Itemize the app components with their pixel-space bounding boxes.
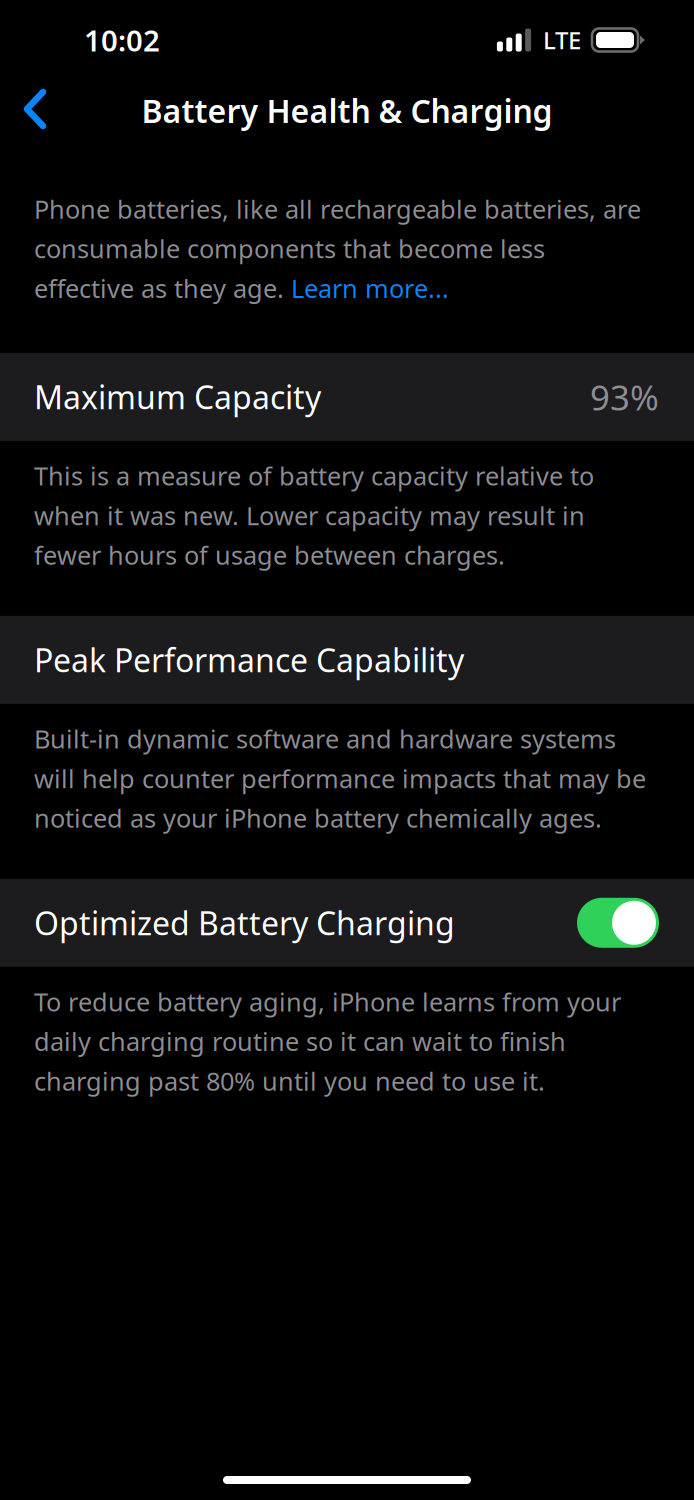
staticText: consumable components that become less bbox=[34, 232, 545, 265]
staticText: Maximum Capacity bbox=[34, 376, 321, 418]
staticText: LTE bbox=[543, 24, 581, 56]
staticText: To reduce battery aging, iPhone learns f… bbox=[34, 985, 621, 1098]
button[interactable]: Optimized Battery Charging bbox=[0, 879, 694, 967]
staticText: 10:02 bbox=[84, 20, 160, 59]
staticText: effective as they age. bbox=[34, 271, 291, 305]
staticText: Optimized Battery Charging bbox=[34, 901, 455, 944]
button[interactable]: Learn more... bbox=[291, 271, 449, 305]
staticText: Peak Performance Capability bbox=[34, 639, 464, 681]
button[interactable]: Maximum Capacity bbox=[0, 353, 694, 441]
staticText: Battery Health & Charging bbox=[141, 89, 552, 132]
button[interactable]: Back bbox=[0, 81, 70, 137]
staticText: Built-in dynamic software and hardware s… bbox=[34, 722, 646, 835]
button[interactable]: Peak Performance Capability bbox=[0, 616, 694, 704]
staticText: Learn more... bbox=[291, 271, 449, 305]
staticText: This is a measure of battery capacity re… bbox=[34, 459, 594, 572]
staticText: Phone batteries, like all rechargeable b… bbox=[34, 192, 641, 226]
staticText: 93% bbox=[590, 374, 659, 420]
